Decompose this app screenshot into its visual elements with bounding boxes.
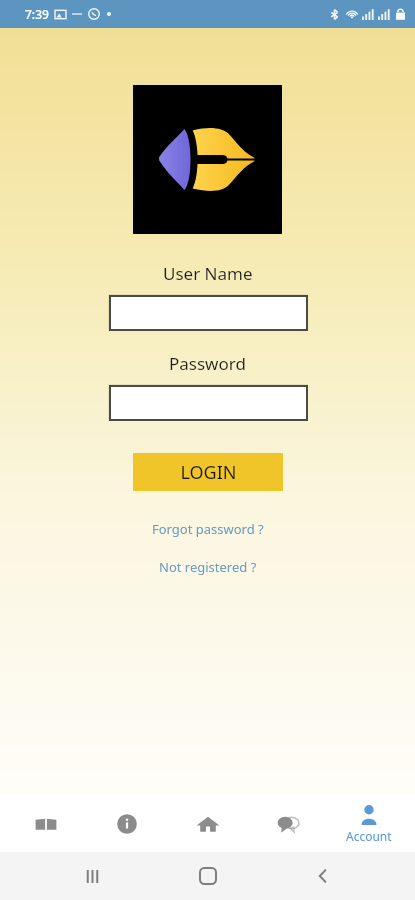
staticText: Password [169,352,246,375]
button[interactable]: Account [334,795,404,852]
button[interactable]: Library [11,795,81,852]
button[interactable] [109,295,308,331]
button[interactable]: Recent apps [68,852,116,900]
button[interactable]: Messages [253,795,323,852]
button[interactable]: Home [173,795,243,852]
button[interactable]: Back [299,852,347,900]
button[interactable]: Forgot password ? [142,517,274,541]
button[interactable]: Not registered ? [149,555,267,579]
button[interactable] [109,385,308,421]
staticText: 7:39 [25,6,49,22]
staticText: User Name [163,262,253,285]
staticText: Account [346,828,392,844]
button[interactable]: Info [92,795,162,852]
button[interactable]: Home [184,852,232,900]
button[interactable]: LOGIN [133,453,283,491]
staticText: LOGIN [180,460,237,485]
